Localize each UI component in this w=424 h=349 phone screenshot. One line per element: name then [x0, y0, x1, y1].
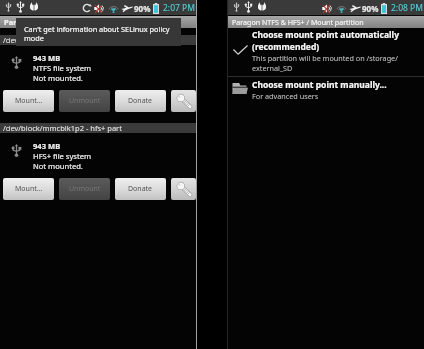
button[interactable]: Choose mount point automatically	[228, 28, 424, 76]
staticText: 943 MB	[33, 53, 61, 63]
staticText: 943 MB	[33, 141, 61, 151]
staticText: /dev/block/mmcblk1p1 - ntfs part	[3, 35, 121, 45]
staticText: Paragon NTFS & HFS+ / Mount partition	[232, 17, 364, 27]
staticText: Mount...	[15, 96, 43, 106]
staticText: HFS+ file system	[33, 151, 92, 161]
staticText: /dev/block/mmcblk1p2 - hfs+ part	[3, 123, 122, 133]
button[interactable]: Mount...	[3, 178, 54, 200]
staticText: (recommended)	[252, 41, 320, 53]
staticText: Unmount	[69, 184, 101, 194]
button[interactable]: Mount...	[3, 90, 54, 112]
staticText: Donate	[128, 96, 153, 106]
staticText: Can't get information about SELinux poli…	[24, 24, 170, 43]
staticText: NTFS file system	[33, 63, 92, 73]
staticText: Choose mount point automatically	[252, 29, 399, 41]
button[interactable]: Settings	[171, 90, 196, 112]
staticText: Donate	[128, 184, 153, 194]
staticText: Not mounted.	[33, 73, 83, 83]
staticText: 90%	[362, 3, 379, 14]
staticText: 2:07 PM	[163, 2, 195, 14]
button[interactable]: Donate	[115, 178, 166, 200]
staticText: For advanced users	[252, 91, 319, 101]
staticText: Choose mount point manually...	[252, 79, 387, 91]
button[interactable]: Donate	[115, 90, 166, 112]
button[interactable]: Settings	[171, 178, 196, 200]
button[interactable]: Unmount	[59, 178, 110, 200]
staticText: Mount...	[15, 184, 43, 194]
staticText: This partition will be mounted on /stora…	[252, 53, 398, 63]
staticText: Not mounted.	[33, 161, 83, 171]
staticText: Paragon NTFS & HFS+	[4, 17, 84, 27]
button[interactable]: Unmount	[59, 90, 110, 112]
staticText: Unmount	[69, 96, 101, 106]
staticText: 90%	[134, 3, 151, 14]
staticText: external_SD	[252, 63, 293, 73]
staticText: 2:08 PM	[391, 2, 423, 14]
button[interactable]: Choose mount point manually...	[228, 77, 424, 103]
